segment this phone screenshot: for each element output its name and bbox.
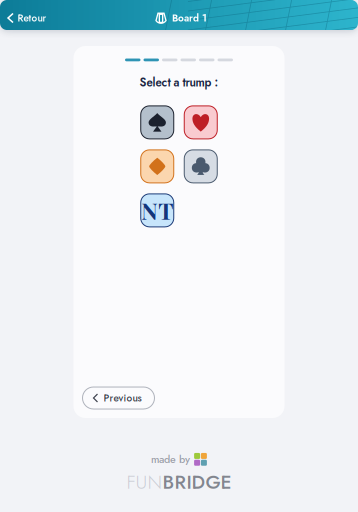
button[interactable]: Hearts — [184, 106, 217, 139]
button[interactable]: Spades — [141, 106, 174, 139]
button[interactable]: Clubs — [184, 150, 217, 183]
staticText: Board 1 — [172, 11, 207, 25]
staticText: made by — [151, 452, 190, 467]
button[interactable]: Previous — [82, 387, 154, 409]
staticText: Retour — [17, 11, 46, 25]
staticText: Select a trump : — [139, 74, 218, 91]
button[interactable]: No trump — [141, 194, 174, 227]
staticText: Previous — [103, 391, 141, 405]
button[interactable]: Diamonds — [141, 150, 174, 183]
staticText: FUN — [126, 468, 162, 496]
staticText: BRIDGE — [162, 468, 231, 496]
button[interactable]: Retour — [0, 3, 56, 33]
staticText: NT — [141, 195, 173, 226]
